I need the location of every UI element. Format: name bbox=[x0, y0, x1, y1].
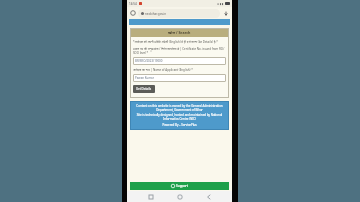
staticText: Site is technically designed, hosted and… bbox=[133, 113, 226, 121]
staticText: 14:54 bbox=[129, 2, 137, 6]
button[interactable]: Reload page bbox=[130, 10, 136, 16]
button[interactable]: Recent apps bbox=[145, 191, 156, 202]
staticText: Support bbox=[176, 184, 188, 188]
staticText: आवेदक का नाम | Name of Applicant (Englis… bbox=[133, 68, 193, 72]
button[interactable]: Home bbox=[174, 191, 185, 202]
staticText: *आवेदक को अपनी प्रविष्टि अंग्रेजी (Engli… bbox=[133, 40, 218, 44]
button[interactable]: Support bbox=[130, 182, 229, 190]
staticText: खोज / Search bbox=[168, 30, 191, 35]
button[interactable]: Get Details bbox=[133, 85, 155, 93]
staticText: BR/SRO/2023/19000 bbox=[135, 59, 163, 63]
staticText: Powered By – ServicePlus bbox=[133, 123, 226, 127]
staticText: प्रमाण पत्र की अनुक्रमांक / निर्गत कार्य… bbox=[133, 47, 226, 55]
button[interactable]: Back bbox=[203, 191, 214, 202]
button[interactable]: Downloads bbox=[222, 10, 229, 17]
staticText: Pawan Kumar bbox=[135, 76, 154, 80]
staticText: ☰ ▮ ▮ bbox=[217, 2, 224, 6]
staticText: Get Details bbox=[136, 87, 152, 91]
button[interactable]: BR/SRO/2023/19000 bbox=[133, 57, 226, 65]
staticText: Content on this website is owned by the … bbox=[133, 104, 226, 112]
button[interactable]: nexbihar.gov.in bbox=[138, 9, 220, 18]
staticText: nexbihar.gov.in bbox=[145, 12, 167, 16]
button[interactable]: Pawan Kumar bbox=[133, 74, 226, 82]
